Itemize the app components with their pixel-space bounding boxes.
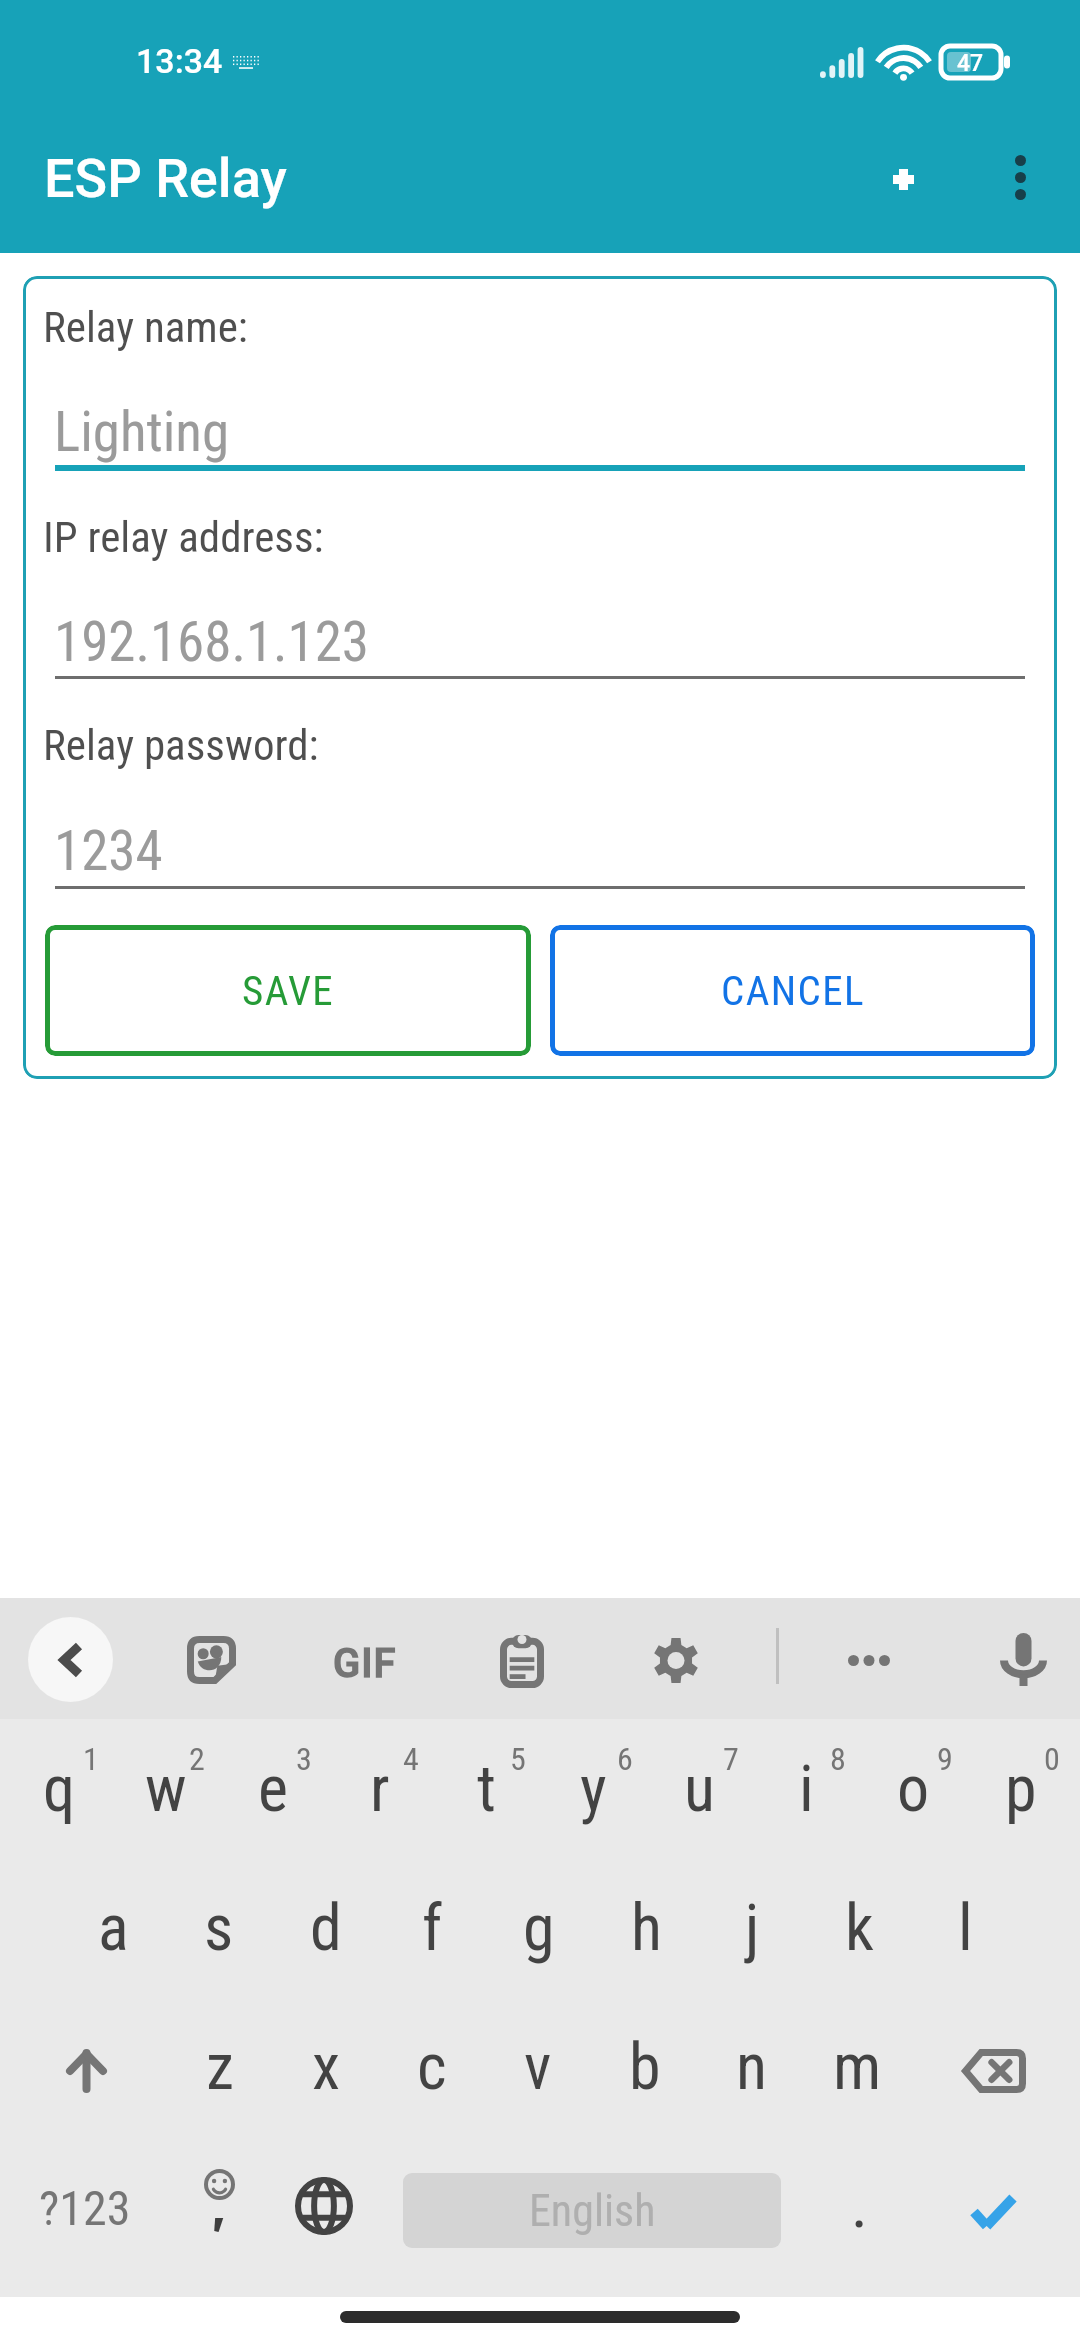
staticText: f: [422, 1891, 443, 1966]
button[interactable]: s: [166, 1855, 272, 1991]
staticText: k: [845, 1891, 874, 1966]
button[interactable]: i: [753, 1716, 860, 1852]
staticText: 0: [1044, 1740, 1060, 1778]
staticText: 13:34: [136, 41, 223, 81]
staticText: 3: [296, 1740, 312, 1778]
staticText: Lighting: [54, 400, 230, 464]
staticText: Relay name:: [43, 302, 248, 352]
button[interactable]: w: [112, 1716, 219, 1852]
button[interactable]: a: [60, 1855, 166, 1991]
button[interactable]: x: [273, 1994, 379, 2130]
staticText: x: [312, 2030, 341, 2105]
button[interactable]: n: [698, 1994, 804, 2130]
button[interactable]: j: [699, 1855, 805, 1991]
staticText: n: [736, 2030, 767, 2105]
button[interactable]: Stickers: [187, 1636, 236, 1684]
staticText: .: [851, 2168, 868, 2243]
button[interactable]: d: [273, 1855, 379, 1991]
button[interactable]: z: [167, 1994, 273, 2130]
staticText: 1234: [54, 819, 163, 883]
staticText: s: [204, 1891, 234, 1966]
staticText: 47: [957, 50, 984, 77]
button[interactable]: r: [326, 1716, 433, 1852]
button[interactable]: o: [860, 1716, 967, 1852]
button[interactable]: Voice input: [1004, 1633, 1043, 1686]
staticText: l: [958, 1891, 973, 1966]
button[interactable]: f: [379, 1855, 485, 1991]
button[interactable]: u: [646, 1716, 753, 1852]
button[interactable]: e: [219, 1716, 326, 1852]
button[interactable]: SAVE: [45, 925, 531, 1056]
button[interactable]: g: [486, 1855, 592, 1991]
staticText: m: [833, 2030, 882, 2105]
button[interactable]: k: [806, 1855, 912, 1991]
staticText: 7: [723, 1740, 739, 1778]
staticText: a: [98, 1891, 129, 1966]
button[interactable]: More options: [970, 127, 1070, 227]
staticText: GIF: [333, 1640, 397, 1687]
button[interactable]: Backspace: [934, 2003, 1054, 2139]
staticText: p: [1005, 1752, 1037, 1827]
staticText: g: [523, 1891, 555, 1966]
button[interactable]: m: [804, 1994, 910, 2130]
staticText: c: [417, 2030, 447, 2105]
staticText: SAVE: [242, 967, 335, 1015]
staticText: 4: [403, 1740, 419, 1778]
staticText: e: [258, 1752, 288, 1827]
button[interactable]: Settings: [653, 1637, 699, 1684]
button[interactable]: Shift: [26, 2003, 146, 2139]
staticText: 1: [83, 1740, 99, 1778]
staticText: CANCEL: [721, 967, 865, 1015]
button[interactable]: p: [967, 1716, 1074, 1852]
staticText: i: [799, 1752, 814, 1827]
staticText: w: [145, 1752, 187, 1827]
staticText: r: [370, 1752, 390, 1827]
staticText: 9: [937, 1740, 953, 1778]
button[interactable]: More: [848, 1655, 890, 1666]
button[interactable]: b: [592, 1994, 698, 2130]
staticText: v: [524, 2030, 552, 2105]
button[interactable]: Add relay: [853, 129, 953, 229]
button[interactable]: c: [379, 1994, 485, 2130]
staticText: ESP Relay: [44, 147, 287, 210]
staticText: d: [310, 1891, 342, 1966]
staticText: 192.168.1.123: [54, 610, 370, 674]
button[interactable]: Emoji: [165, 2157, 275, 2237]
button[interactable]: English: [403, 2173, 781, 2248]
staticText: Relay password:: [43, 720, 319, 770]
staticText: 8: [830, 1740, 846, 1778]
staticText: 2: [189, 1740, 205, 1778]
staticText: z: [206, 2030, 235, 2105]
staticText: q: [43, 1752, 76, 1827]
button[interactable]: h: [593, 1855, 699, 1991]
button[interactable]: l: [912, 1855, 1018, 1991]
button[interactable]: q: [6, 1716, 113, 1852]
staticText: t: [477, 1752, 496, 1827]
button[interactable]: CANCEL: [550, 925, 1035, 1056]
staticText: b: [629, 2030, 661, 2105]
staticText: o: [897, 1752, 930, 1827]
staticText: y: [580, 1752, 607, 1827]
button[interactable]: Clipboard: [500, 1635, 544, 1688]
staticText: 6: [617, 1740, 633, 1778]
staticText: 5: [510, 1740, 526, 1778]
staticText: j: [745, 1891, 760, 1966]
staticText: IP relay address:: [43, 512, 324, 562]
staticText: ?123: [39, 2180, 131, 2236]
button[interactable]: v: [485, 1994, 591, 2130]
staticText: u: [684, 1752, 715, 1827]
staticText: English: [529, 2185, 656, 2237]
button[interactable]: Change keyboard language: [269, 2146, 379, 2266]
button[interactable]: Enter: [940, 2172, 1050, 2232]
button[interactable]: Back: [28, 1617, 113, 1702]
button[interactable]: t: [433, 1716, 540, 1852]
staticText: h: [631, 1891, 662, 1966]
button[interactable]: y: [540, 1716, 647, 1852]
